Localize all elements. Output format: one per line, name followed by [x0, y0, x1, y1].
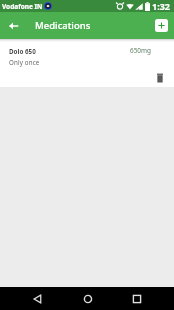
staticText: Dolo 650: [9, 47, 36, 56]
staticText: Only once: [9, 58, 40, 66]
button[interactable]: Recent apps: [125, 287, 148, 310]
button[interactable]: Home: [76, 287, 99, 310]
staticText: 650mg: [130, 46, 151, 55]
staticText: Vodafone IN: [2, 2, 43, 11]
button[interactable]: Delete: [153, 71, 167, 85]
button[interactable]: Add: [155, 19, 168, 32]
staticText: Medications: [35, 19, 91, 32]
staticText: 1:32: [152, 0, 170, 12]
button[interactable]: Back: [0, 12, 27, 39]
button[interactable]: Dolo 650: [0, 39, 174, 87]
button[interactable]: Back: [26, 287, 49, 310]
